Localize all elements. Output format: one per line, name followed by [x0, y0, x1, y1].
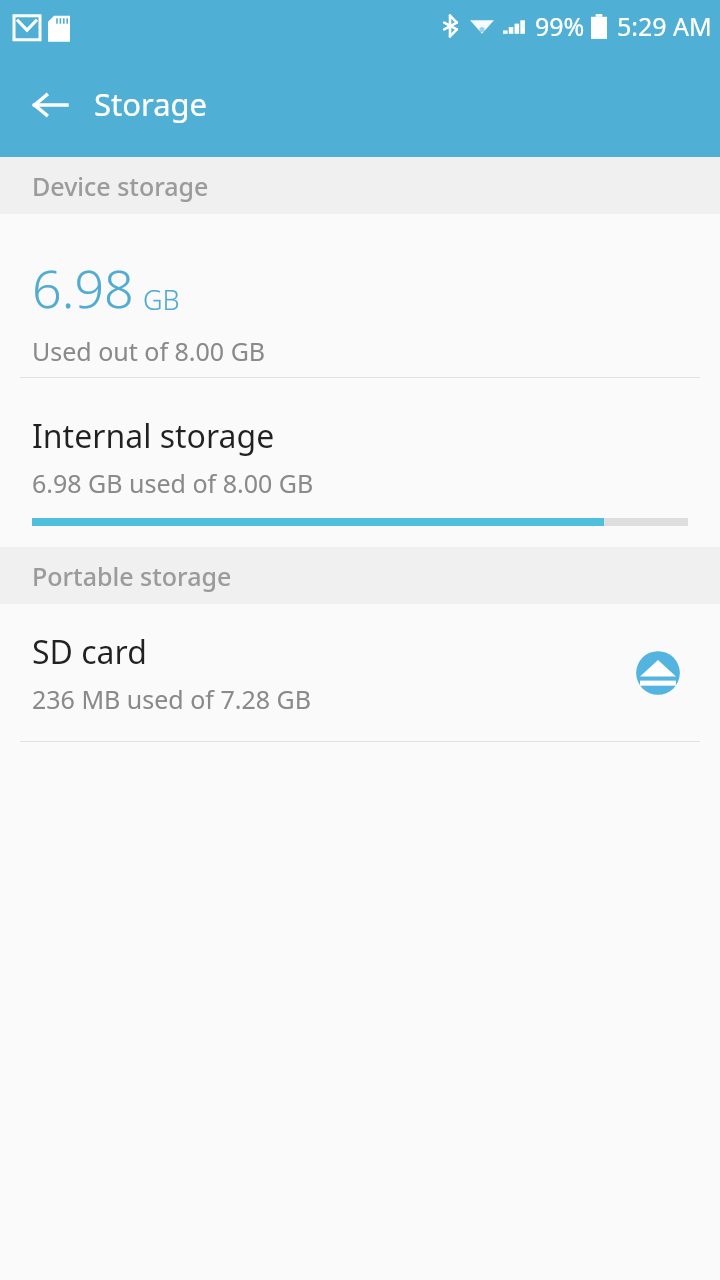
- staticText: Portable storage: [32, 559, 232, 593]
- staticText: 99%: [535, 9, 585, 43]
- staticText: Internal storage: [32, 414, 275, 458]
- staticText: GB: [143, 281, 180, 318]
- button[interactable]: Back: [22, 77, 78, 133]
- staticText: 6.98 GB used of 8.00 GB: [32, 466, 314, 500]
- staticText: 236 MB used of 7.28 GB: [32, 682, 312, 716]
- staticText: 5:29 AM: [617, 9, 712, 43]
- staticText: 6.98: [32, 252, 134, 323]
- button[interactable]: SD card: [0, 604, 720, 741]
- staticText: SD card: [32, 630, 147, 674]
- button[interactable]: Eject SD card: [630, 645, 686, 701]
- staticText: Used out of 8.00 GB: [32, 334, 266, 368]
- staticText: Device storage: [32, 169, 209, 203]
- button[interactable]: Internal storage: [0, 378, 720, 547]
- staticText: Storage: [94, 83, 208, 125]
- button[interactable]: 6.98: [0, 214, 720, 377]
